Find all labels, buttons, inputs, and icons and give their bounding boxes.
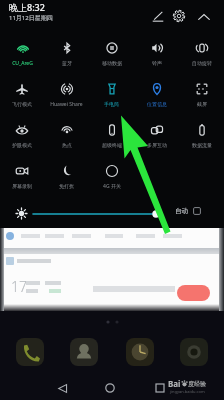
staticText: 多屏互动 — [147, 142, 167, 148]
staticText: 4G 开关 — [103, 183, 121, 190]
button[interactable]: Home — [98, 376, 122, 400]
staticText: CU_AreG — [12, 60, 33, 67]
staticText: 晚上8:32 — [9, 1, 45, 13]
button[interactable]: 铃声 — [134, 31, 179, 72]
button[interactable]: App icon — [126, 338, 154, 366]
button[interactable]: Open — [177, 285, 210, 301]
button[interactable]: 4G 开关 — [89, 154, 134, 195]
button[interactable]: Edit tiles — [147, 5, 169, 27]
button[interactable]: 自动 — [175, 207, 201, 215]
staticText: 铃声 — [152, 60, 162, 66]
button[interactable]: 护眼模式 — [0, 113, 44, 154]
staticText: 蓝牙 — [62, 60, 72, 66]
button[interactable]: 17 — [4, 228, 219, 311]
staticText: 度经验 — [188, 380, 206, 388]
button[interactable]: App icon — [16, 338, 44, 366]
button[interactable]: 数据流量 — [179, 113, 224, 154]
button[interactable]: CU_AreG — [0, 31, 44, 72]
button[interactable]: 截屏 — [179, 72, 224, 113]
button[interactable]: 屏幕录制 — [0, 154, 44, 195]
button[interactable]: Recent apps — [148, 376, 172, 400]
button[interactable]: 超级终端 — [89, 113, 134, 154]
button[interactable]: 手电筒 — [89, 72, 134, 113]
staticText: 免打扰 — [59, 183, 74, 189]
button[interactable]: 自动旋转 — [179, 31, 224, 72]
button[interactable]: Brightness slider — [31, 206, 163, 222]
staticText: 17 — [11, 277, 27, 296]
button[interactable] — [134, 154, 179, 195]
button[interactable]: Brightness — [13, 205, 29, 221]
button[interactable]: App icon — [180, 338, 208, 366]
staticText: 热点 — [62, 142, 72, 148]
button[interactable]: Back — [50, 376, 74, 400]
staticText: 位置信息 — [147, 101, 167, 107]
button[interactable]: Collapse panel — [193, 6, 215, 28]
staticText: 截屏 — [197, 101, 207, 107]
button[interactable]: Huawei Share — [44, 72, 89, 113]
staticText: 11月12日星期四 — [9, 14, 53, 22]
button[interactable]: 飞行模式 — [0, 72, 44, 113]
staticText: 手电筒 — [104, 101, 119, 107]
staticText: 飞行模式 — [12, 101, 32, 107]
button[interactable]: 免打扰 — [44, 154, 89, 195]
button[interactable]: 位置信息 — [134, 72, 179, 113]
staticText: 护眼模式 — [12, 142, 32, 148]
button[interactable]: 移动数据 — [89, 31, 134, 72]
staticText: Huawei Share — [50, 101, 83, 108]
button[interactable]: Settings — [168, 5, 190, 27]
button[interactable]: 热点 — [44, 113, 89, 154]
staticText: 自动旋转 — [192, 60, 212, 66]
staticText: 自动 — [175, 207, 188, 215]
staticText: 数据流量 — [192, 142, 212, 148]
staticText: 屏幕录制 — [12, 183, 32, 189]
button[interactable]: App icon — [70, 338, 98, 366]
staticText: Bai — [168, 378, 181, 389]
button[interactable]: 蓝牙 — [44, 31, 89, 72]
staticText: jingyan.baidu.com — [170, 389, 205, 394]
staticText: 超级终端 — [102, 142, 122, 148]
button[interactable]: 多屏互动 — [134, 113, 179, 154]
staticText: 移动数据 — [102, 60, 122, 66]
